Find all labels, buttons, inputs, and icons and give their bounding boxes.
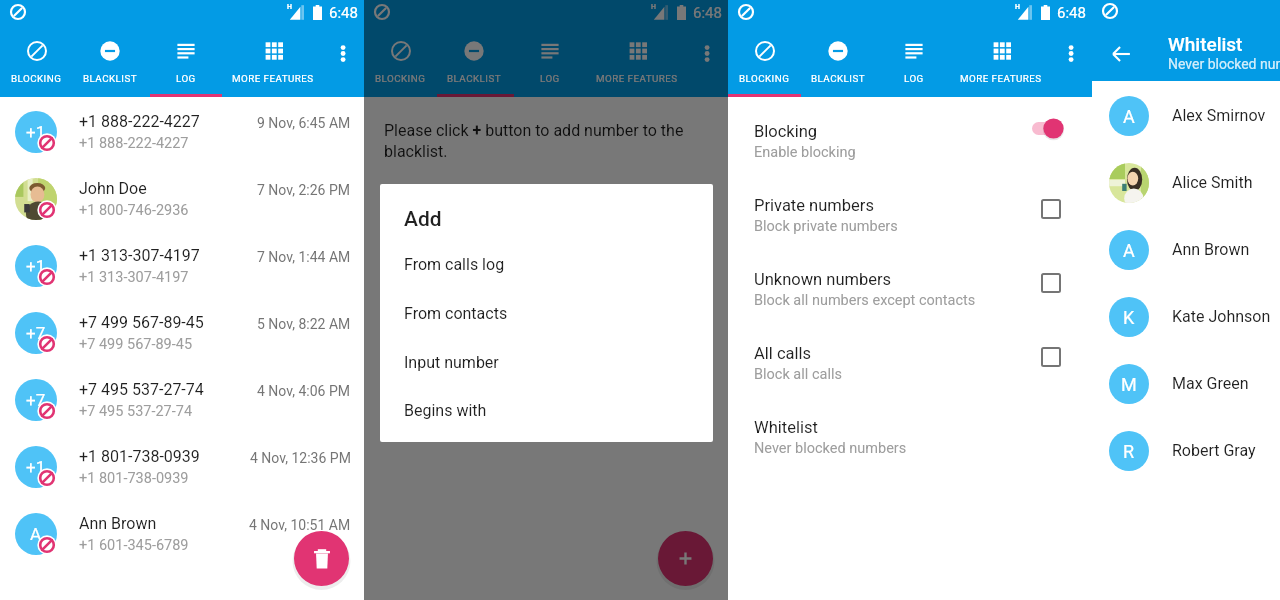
button[interactable]: Blocking — [728, 109, 1092, 183]
staticText: Private numbers — [754, 196, 874, 215]
button[interactable]: BLACKLIST — [73, 27, 147, 94]
button[interactable]: A — [1092, 83, 1280, 150]
button[interactable]: MORE FEATURES — [943, 27, 1059, 94]
button[interactable]: More options — [331, 35, 355, 65]
staticText: +7 495 537-27-74 — [79, 380, 204, 399]
staticText: BLACKLIST — [811, 73, 865, 84]
staticText: Alex Smirnov — [1172, 106, 1266, 125]
button[interactable]: Alice Smith — [1092, 150, 1280, 217]
button[interactable]: BLOCKING — [728, 27, 800, 94]
button[interactable]: BLOCKING — [0, 27, 72, 94]
staticText: 6:48 — [329, 4, 358, 22]
staticText: +7 499 567-89-45 — [79, 313, 204, 332]
staticText: Add — [404, 207, 442, 232]
staticText: BLOCKING — [739, 73, 790, 84]
button[interactable]: R — [1092, 418, 1280, 485]
staticText: K — [1123, 307, 1135, 328]
staticText: Alice Smith — [1172, 173, 1253, 192]
staticText: Block all numbers except contacts — [754, 292, 976, 309]
staticText: MORE FEATURES — [232, 73, 314, 84]
button[interactable]: From contacts — [380, 289, 713, 337]
staticText: Please click + button to add number to t… — [384, 121, 714, 161]
staticText: A — [30, 524, 42, 544]
staticText: Whitelist — [1168, 33, 1243, 55]
button[interactable]: Private numbers — [728, 183, 1092, 257]
staticText: Kate Johnson — [1172, 307, 1271, 326]
staticText: H — [651, 3, 656, 11]
staticText: 5 Nov, 8:22 AM — [257, 316, 351, 332]
staticText: Whitelist — [754, 418, 818, 437]
staticText: Begins with — [404, 401, 487, 420]
staticText: +7 — [26, 390, 46, 410]
staticText: Robert Gray — [1172, 441, 1256, 460]
staticText: +1 313-307-4197 — [79, 269, 189, 286]
staticText: From contacts — [404, 304, 508, 323]
staticText: +1 — [26, 256, 46, 276]
button[interactable]: +7 — [0, 368, 364, 435]
staticText: 6:48 — [1057, 4, 1086, 22]
staticText: Ann Brown — [79, 514, 157, 533]
staticText: 6:48 — [693, 4, 722, 22]
staticText: +1 — [26, 122, 46, 142]
staticText: A — [1123, 106, 1135, 127]
button[interactable]: M — [1092, 351, 1280, 418]
button[interactable]: +1 — [0, 234, 364, 301]
button[interactable]: LOG — [878, 27, 950, 94]
staticText: From calls log — [404, 255, 505, 274]
staticText: BLACKLIST — [83, 73, 137, 84]
staticText: Input number — [404, 353, 499, 372]
staticText: 7 Nov, 2:26 PM — [257, 182, 351, 198]
button[interactable]: Begins with — [380, 386, 713, 434]
button[interactable]: John Doe — [0, 167, 364, 234]
staticText: M — [1121, 374, 1137, 395]
button[interactable]: Back — [1109, 42, 1133, 66]
staticText: +7 495 537-27-74 — [79, 403, 193, 420]
button[interactable]: A — [1092, 217, 1280, 284]
staticText: Ann Brown — [1172, 240, 1250, 259]
staticText: Enable blocking — [754, 144, 856, 161]
button[interactable]: BLOCKING — [364, 27, 436, 94]
staticText: LOG — [904, 73, 924, 84]
button[interactable]: More options — [1059, 35, 1083, 65]
button[interactable]: +1 — [0, 435, 364, 502]
staticText: Block private numbers — [754, 218, 898, 235]
button[interactable]: LOG — [150, 27, 222, 94]
button[interactable]: LOG — [514, 27, 586, 94]
staticText: H — [287, 3, 292, 11]
staticText: BLACKLIST — [447, 73, 501, 84]
button[interactable]: Input number — [380, 338, 713, 386]
button[interactable]: A — [0, 502, 364, 569]
button[interactable]: From calls log — [380, 240, 713, 288]
staticText: +7 — [26, 323, 46, 343]
button[interactable]: Delete — [294, 531, 349, 586]
button[interactable]: +7 — [0, 301, 364, 368]
staticText: Unknown numbers — [754, 270, 892, 289]
staticText: Never blocked numbers — [1168, 56, 1280, 72]
button[interactable]: Add — [658, 531, 713, 586]
staticText: +1 888-222-4227 — [79, 112, 200, 131]
staticText: John Doe — [79, 179, 147, 198]
button[interactable]: MORE FEATURES — [579, 27, 695, 94]
staticText: +1 800-746-2936 — [79, 202, 189, 219]
staticText: Max Green — [1172, 374, 1249, 393]
staticText: LOG — [540, 73, 560, 84]
staticText: 7 Nov, 1:44 AM — [257, 249, 351, 265]
button[interactable]: Unknown numbers — [728, 257, 1092, 331]
button[interactable]: Whitelist — [728, 405, 1092, 479]
button[interactable]: All calls — [728, 331, 1092, 405]
button[interactable]: More options — [695, 35, 719, 65]
staticText: 9 Nov, 6:45 AM — [257, 115, 351, 131]
staticText: Block all calls — [754, 366, 842, 383]
staticText: +1 313-307-4197 — [79, 246, 200, 265]
staticText: BLOCKING — [375, 73, 426, 84]
staticText: 4 Nov, 12:36 PM — [250, 450, 351, 466]
staticText: 4 Nov, 10:51 AM — [249, 517, 351, 533]
staticText: R — [1123, 441, 1135, 462]
staticText: +1 801-738-0939 — [79, 447, 200, 466]
button[interactable]: MORE FEATURES — [215, 27, 331, 94]
staticText: Never blocked numbers — [754, 440, 907, 457]
button[interactable]: K — [1092, 284, 1280, 351]
button[interactable]: +1 — [0, 100, 364, 167]
button[interactable]: BLACKLIST — [801, 27, 875, 94]
button[interactable]: BLACKLIST — [437, 27, 511, 94]
